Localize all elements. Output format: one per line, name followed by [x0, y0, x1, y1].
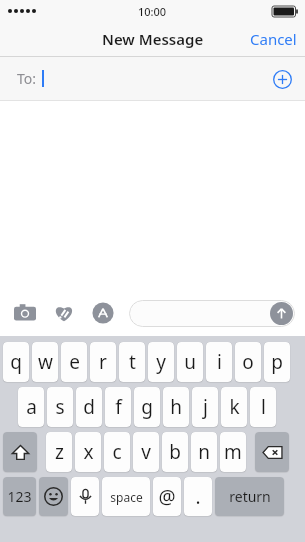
staticText: 123	[7, 487, 32, 506]
button[interactable]: k	[221, 387, 247, 427]
button[interactable]: x	[75, 432, 101, 472]
staticText: p	[271, 349, 283, 375]
button[interactable]: p	[264, 342, 290, 382]
staticText: j	[203, 394, 208, 420]
button[interactable]: j	[192, 387, 218, 427]
staticText: New Message	[102, 29, 204, 49]
button[interactable]: Cancel	[250, 22, 297, 56]
staticText: l	[261, 394, 266, 420]
button[interactable]: Digital Touch	[49, 298, 79, 328]
staticText: x	[83, 439, 94, 465]
staticText: @	[158, 484, 176, 510]
button[interactable]: t	[119, 342, 145, 382]
button[interactable]: Backspace	[255, 432, 289, 472]
staticText: g	[141, 394, 153, 420]
staticText: c	[112, 439, 122, 465]
staticText: n	[198, 439, 210, 465]
staticText: h	[170, 394, 182, 420]
button[interactable]: z	[46, 432, 72, 472]
staticText: u	[184, 349, 196, 375]
button[interactable]: q	[3, 342, 29, 382]
button[interactable]: To:	[0, 57, 305, 100]
staticText: return	[229, 487, 271, 506]
button[interactable]: l	[250, 387, 276, 427]
button[interactable]: d	[76, 387, 102, 427]
staticText: y	[156, 349, 166, 375]
staticText: r	[99, 349, 107, 375]
button[interactable]: a	[18, 387, 44, 427]
button[interactable]: 123	[3, 477, 36, 516]
button[interactable]: w	[32, 342, 58, 382]
button[interactable]: .	[184, 477, 212, 516]
staticText: w	[38, 349, 53, 375]
staticText: b	[169, 439, 181, 465]
staticText: f	[115, 394, 122, 420]
button[interactable]: Emoji	[39, 477, 68, 516]
staticText: v	[141, 439, 151, 465]
button[interactable]: m	[220, 432, 246, 472]
staticText: k	[229, 394, 240, 420]
button[interactable]: b	[162, 432, 188, 472]
staticText: d	[83, 394, 95, 420]
staticText: .	[195, 484, 201, 510]
staticText: m	[224, 439, 242, 465]
button[interactable]: Dictation	[71, 477, 99, 516]
button[interactable]: Camera	[10, 298, 40, 328]
staticText: 10:00	[138, 4, 167, 19]
button[interactable]: f	[105, 387, 131, 427]
staticText: s	[55, 394, 65, 420]
button[interactable]: Send	[129, 300, 295, 327]
button[interactable]: s	[47, 387, 73, 427]
button[interactable]: space	[102, 477, 150, 516]
staticText: o	[242, 349, 254, 375]
button[interactable]: y	[148, 342, 174, 382]
button[interactable]: u	[177, 342, 203, 382]
button[interactable]: Send	[270, 302, 293, 325]
button[interactable]: App Store	[88, 298, 118, 328]
staticText: i	[217, 349, 222, 375]
staticText: q	[10, 349, 22, 375]
staticText: Cancel	[250, 29, 297, 49]
button[interactable]: e	[61, 342, 87, 382]
staticText: space	[110, 489, 143, 505]
button[interactable]: Add contact	[269, 66, 295, 92]
button[interactable]: c	[104, 432, 130, 472]
button[interactable]: o	[235, 342, 261, 382]
button[interactable]: @	[153, 477, 181, 516]
button[interactable]: g	[134, 387, 160, 427]
button[interactable]: Shift	[3, 432, 37, 472]
button[interactable]: n	[191, 432, 217, 472]
staticText: e	[69, 349, 80, 375]
staticText: t	[129, 349, 136, 375]
button[interactable]: h	[163, 387, 189, 427]
button[interactable]: return	[215, 477, 284, 516]
staticText: To:	[17, 69, 37, 88]
staticText: z	[55, 439, 64, 465]
staticText: a	[26, 394, 37, 420]
button[interactable]: r	[90, 342, 116, 382]
button[interactable]: i	[206, 342, 232, 382]
button[interactable]: v	[133, 432, 159, 472]
